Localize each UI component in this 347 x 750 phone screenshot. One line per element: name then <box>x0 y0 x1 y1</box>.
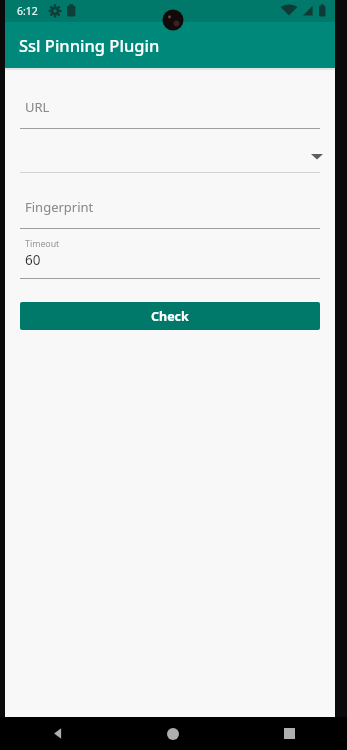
staticText: Check <box>151 308 189 325</box>
staticText: Fingerprint <box>25 198 94 216</box>
button[interactable]: Home <box>115 717 231 750</box>
button[interactable]: URL <box>5 94 335 129</box>
staticText: Timeout <box>25 238 60 250</box>
staticText: Ssl Pinning Plugin <box>19 34 160 56</box>
button[interactable]: Timeout <box>5 238 335 279</box>
staticText: 60 <box>25 251 41 269</box>
button[interactable]: Back <box>0 717 115 750</box>
button[interactable]: Select certificate <box>5 138 335 173</box>
staticText: 6:12 <box>17 4 38 18</box>
button[interactable]: Check <box>20 302 320 330</box>
staticText: URL <box>25 98 50 116</box>
button[interactable]: Recent apps <box>231 717 347 750</box>
button[interactable]: Fingerprint <box>5 194 335 229</box>
